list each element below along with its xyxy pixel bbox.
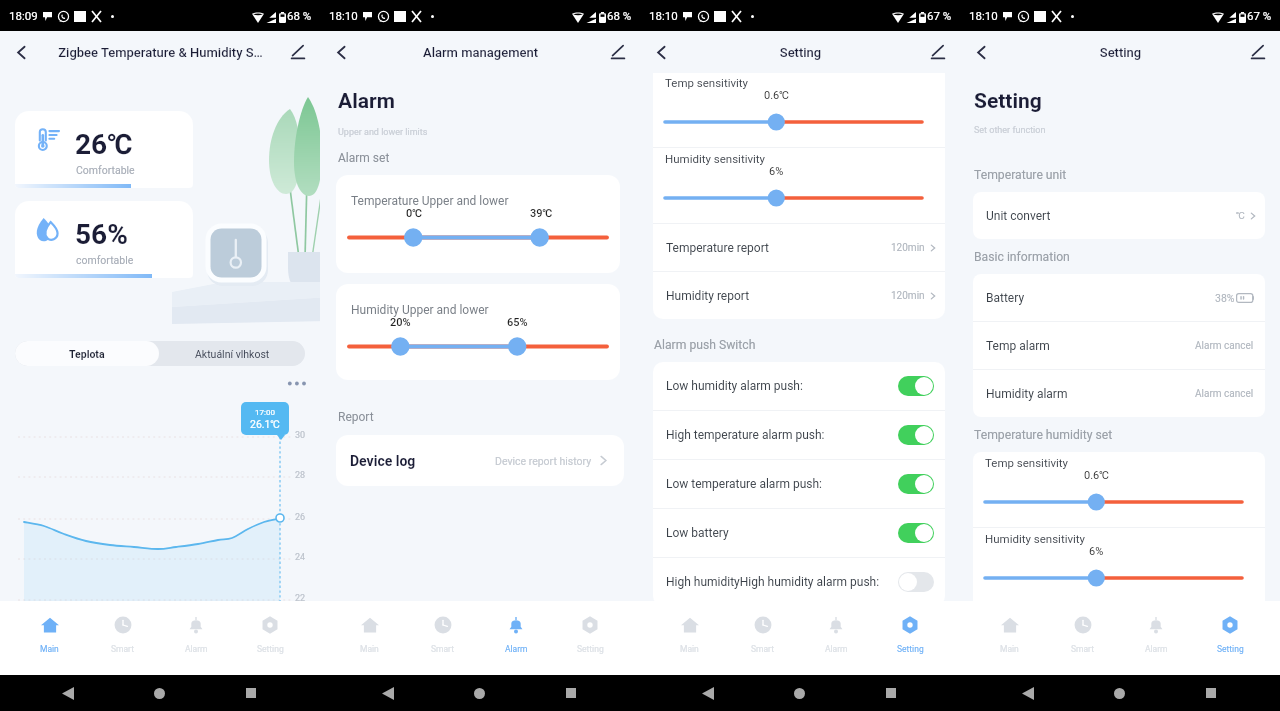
staticText: Main [360,644,379,654]
staticText: 18:09 [9,9,38,22]
staticText: Humidity report [666,289,750,303]
staticText: 0.6℃ [764,89,789,102]
staticText: Smart [751,644,774,654]
button[interactable]: 26℃ [15,111,193,184]
button[interactable]: Back [964,35,998,69]
button[interactable]: Back [644,35,678,69]
button[interactable]: Setting [233,601,307,675]
staticText: Setting [1018,45,1223,60]
staticText: Setting [698,45,903,60]
button[interactable]: Smart [726,601,799,675]
staticText: 30 [295,430,306,441]
staticText: ℃ [1236,210,1245,222]
staticText: Smart [431,644,454,654]
staticText: 24 [295,552,306,563]
staticText: 22 [295,593,306,604]
staticText: 120min [891,290,925,302]
staticText: Smart [111,644,134,654]
button[interactable]: Device log [336,435,624,486]
button[interactable]: Back [4,35,38,69]
button[interactable]: Alarm [159,601,233,675]
button[interactable]: Temperature report [653,224,945,271]
button[interactable]: Edit [1241,35,1275,69]
button[interactable]: Humidity report [653,272,945,319]
button[interactable]: Low battery [653,509,945,557]
button[interactable]: Setting [873,601,947,675]
staticText: Main [1000,644,1019,654]
button[interactable]: Setting [553,601,627,675]
staticText: 65% [507,316,528,329]
button[interactable]: High temperature alarm push: [653,411,945,459]
button[interactable]: More options [286,379,308,388]
staticText: Temp alarm [986,339,1050,353]
staticText: Low battery [666,526,898,540]
staticText: Alarm cancel [1195,388,1254,400]
staticText: 26 [295,512,306,523]
button[interactable]: Off [898,572,934,592]
staticText: 28 [295,470,306,481]
staticText: Temperature Upper and lower [351,194,509,208]
button[interactable]: Setting [1193,601,1267,675]
staticText: Setting [897,644,924,654]
staticText: Main [40,644,59,654]
staticText: 18:10 [969,9,998,22]
button[interactable]: On [898,474,934,494]
button[interactable]: Main [973,601,1046,675]
staticText: 67 % [1247,9,1272,22]
staticText: 20% [390,316,411,329]
staticText: Humidity sensitivity [985,532,1086,545]
staticText: Smart [1071,644,1094,654]
button[interactable]: On [898,425,934,445]
button[interactable]: Edit [281,35,315,69]
staticText: Device log [350,453,416,469]
button[interactable]: Main [13,601,86,675]
staticText: Setting [257,644,284,654]
staticText: Temperature unit [974,168,1067,182]
button[interactable]: Smart [86,601,159,675]
staticText: Temperature humidity set [974,428,1113,442]
staticText: 0.6℃ [1084,469,1109,482]
staticText: Set other function [974,125,1046,136]
button[interactable]: On [898,376,934,396]
staticText: High humidityHigh humidity alarm push: [666,575,898,589]
button[interactable]: Temp alarm [973,322,1265,369]
staticText: Aktuální vlhkost [195,348,270,360]
staticText: 18:10 [649,9,678,22]
button[interactable]: Teplota [15,341,159,366]
staticText: comfortable [76,254,134,266]
staticText: 68 % [287,9,312,22]
button[interactable]: Alarm [479,601,553,675]
button[interactable]: Aktuální vlhkost [159,341,305,366]
button[interactable]: Alarm [799,601,873,675]
staticText: Battery [986,291,1025,305]
button[interactable]: Back [324,35,358,69]
button[interactable]: Smart [406,601,479,675]
button[interactable]: Unit convert [973,192,1265,239]
button[interactable]: Low temperature alarm push: [653,460,945,508]
button[interactable]: Battery [973,274,1265,321]
button[interactable]: Main [653,601,726,675]
button[interactable]: Edit [601,35,635,69]
staticText: High temperature alarm push: [666,428,898,442]
staticText: Alarm [1145,644,1168,654]
button[interactable]: Smart [1046,601,1119,675]
staticText: 68 % [607,9,632,22]
staticText: Upper and lower limits [338,127,428,138]
staticText: 56% [75,218,128,251]
button[interactable]: Humidity alarm [973,370,1265,417]
button[interactable]: Low humidity alarm push: [653,362,945,410]
button[interactable]: Alarm [1119,601,1193,675]
staticText: Alarm cancel [1195,340,1254,352]
button[interactable]: Main [333,601,406,675]
staticText: Low humidity alarm push: [666,379,898,393]
button[interactable]: On [898,523,934,543]
button[interactable]: Edit [921,35,955,69]
staticText: Alarm [338,89,395,114]
button[interactable]: 56% [15,201,193,274]
staticText: 6% [1089,545,1104,558]
button[interactable]: High humidityHigh humidity alarm push: [653,558,945,606]
staticText: 6% [769,165,784,178]
staticText: Humidity sensitivity [665,152,766,165]
staticText: Humidity alarm [986,387,1068,401]
staticText: Zigbee Temperature & Humidity S... [58,45,263,60]
